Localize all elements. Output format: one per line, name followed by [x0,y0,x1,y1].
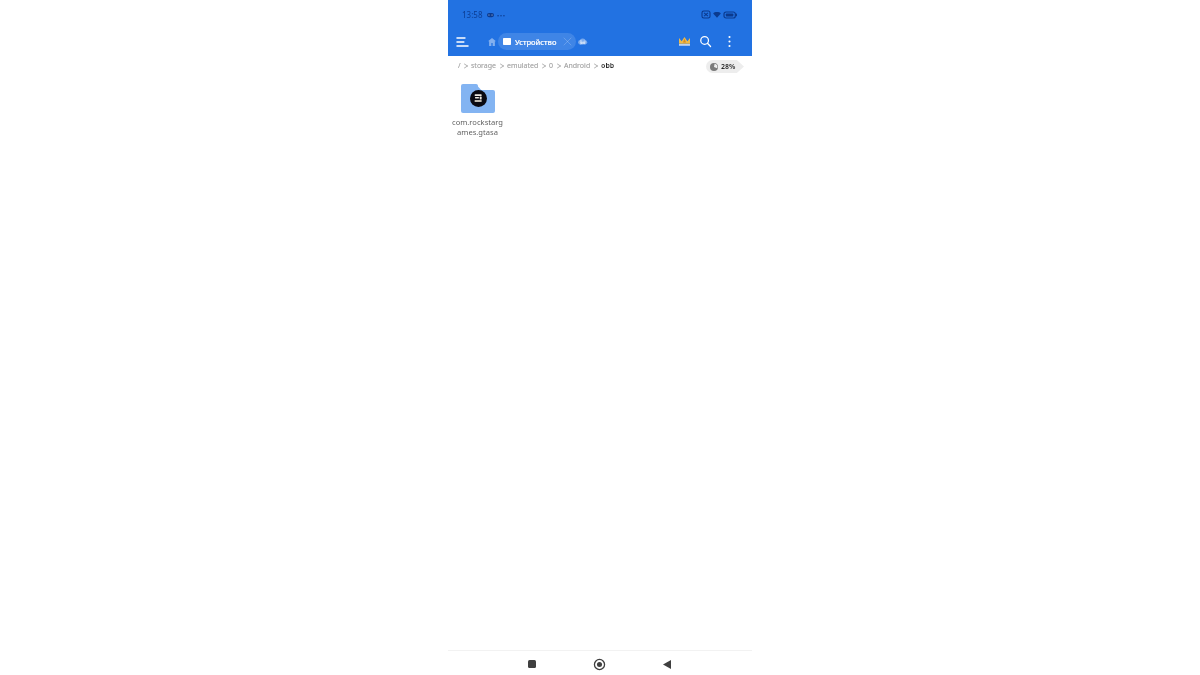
button[interactable]: 28% [706,60,744,73]
staticText: Android [564,61,591,71]
button[interactable]: Home [484,34,499,49]
button[interactable]: Cloud storage [575,34,590,49]
button[interactable]: / [458,61,615,71]
button[interactable]: Back [657,654,677,674]
staticText: storage [471,61,497,71]
button[interactable]: Home [589,654,609,674]
button[interactable]: Recent apps [522,654,542,674]
button[interactable]: com.rockstargames.gtasa [451,84,504,137]
button[interactable]: Close tab [561,35,574,48]
staticText: 28% [721,62,736,72]
staticText: com.rockstargames.gtasa [451,117,504,137]
staticText: emulated [507,61,539,71]
staticText: / [458,61,461,71]
button[interactable]: Menu [454,33,471,50]
staticText: obb [601,61,615,71]
button[interactable]: Premium [676,33,693,50]
staticText: Устройство [515,37,557,47]
button[interactable]: Устройство [498,33,576,50]
staticText: 0 [549,61,554,71]
button[interactable]: Search [697,33,714,50]
staticText: 13:58 [462,9,483,20]
button[interactable]: More options [721,33,738,50]
